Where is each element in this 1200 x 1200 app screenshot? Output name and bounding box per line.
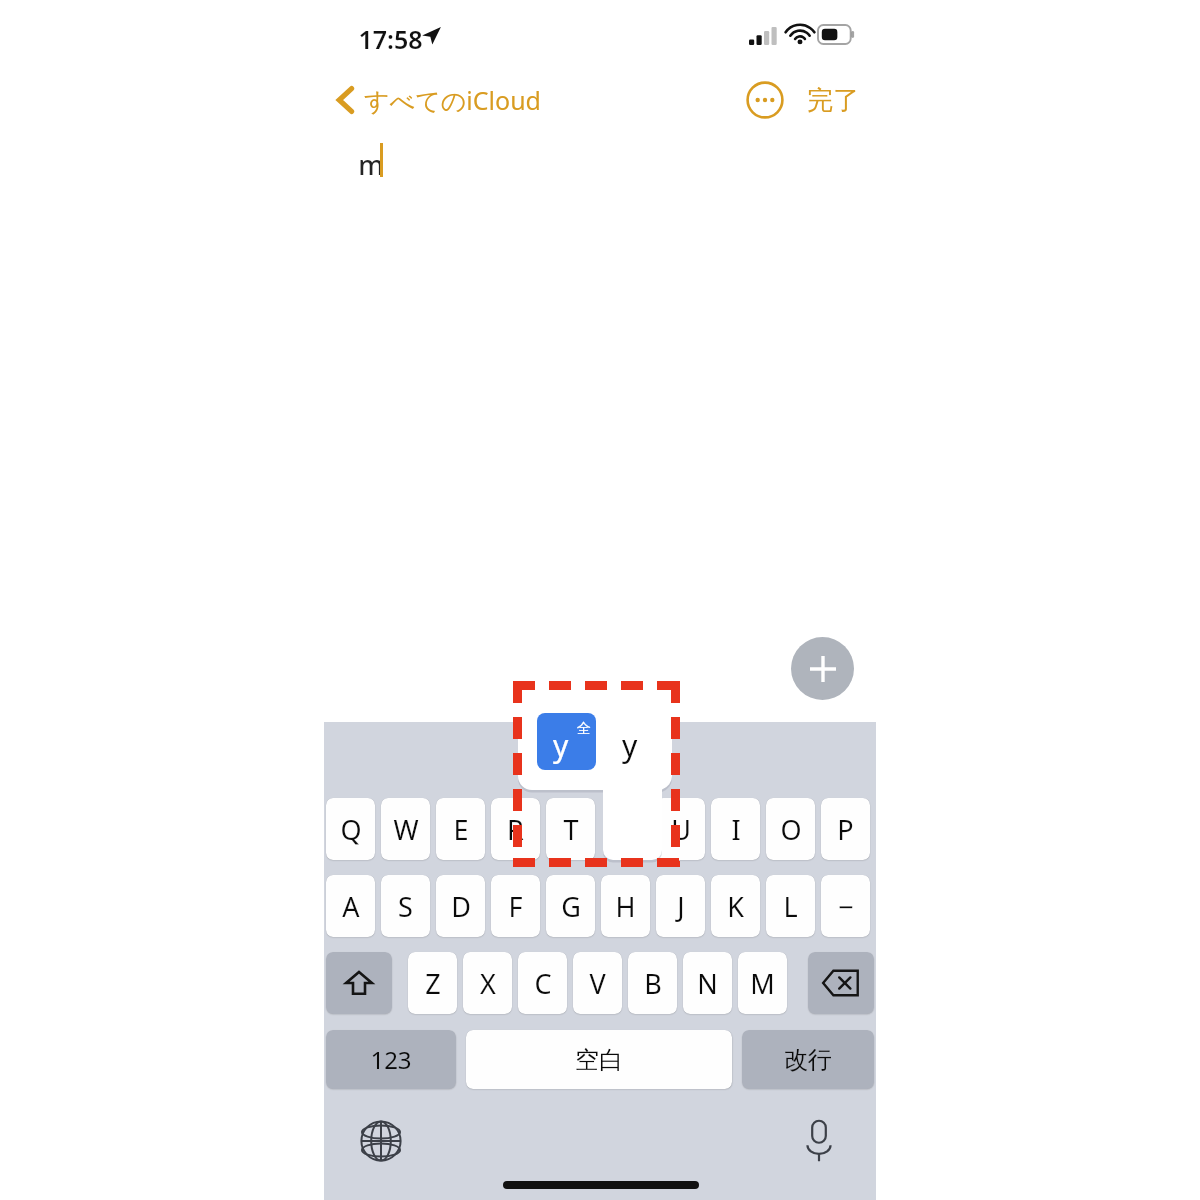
button[interactable]: M [738, 952, 787, 1014]
staticText: P [837, 811, 854, 848]
staticText: 空白 [575, 1045, 623, 1075]
button[interactable]: y [600, 713, 659, 770]
staticText: R [507, 811, 524, 848]
button[interactable]: X [463, 952, 512, 1014]
button[interactable]: I [711, 798, 760, 860]
button[interactable]: Dictation [790, 1112, 848, 1170]
staticText: F [508, 888, 523, 925]
button[interactable]: 完了 [798, 78, 868, 122]
button[interactable]: V [573, 952, 622, 1014]
button[interactable]: L [766, 875, 815, 937]
staticText: D [451, 888, 471, 925]
button[interactable]: y [537, 713, 596, 770]
button[interactable]: C [518, 952, 567, 1014]
button[interactable]: D [436, 875, 485, 937]
button[interactable]: Z [408, 952, 457, 1014]
button[interactable]: E [436, 798, 485, 860]
button[interactable]: 空白 [466, 1030, 732, 1089]
button[interactable]: Shift [326, 952, 392, 1014]
staticText: I [731, 811, 741, 848]
staticText: W [393, 811, 419, 848]
staticText: 完了 [807, 84, 859, 117]
staticText: T [563, 811, 579, 848]
staticText: U [671, 811, 691, 848]
button[interactable]: O [766, 798, 815, 860]
staticText: 17:58 [358, 22, 423, 56]
staticText: Z [425, 965, 441, 1002]
button[interactable]: N [683, 952, 732, 1014]
button[interactable]: G [546, 875, 595, 937]
staticText: y [553, 725, 569, 766]
staticText: M [750, 965, 775, 1002]
button[interactable]: F [491, 875, 540, 937]
button[interactable]: すべてのiCloud [330, 78, 530, 122]
button[interactable]: − [821, 875, 870, 937]
button[interactable]: P [821, 798, 870, 860]
button[interactable]: Q [326, 798, 375, 860]
staticText: X [480, 965, 496, 1002]
button[interactable]: A [326, 875, 375, 937]
staticText: − [838, 888, 854, 925]
button[interactable]: U [656, 798, 705, 860]
button[interactable]: 123 [326, 1030, 456, 1089]
staticText: m [358, 146, 384, 183]
staticText: A [342, 888, 360, 925]
staticText: K [727, 888, 744, 925]
staticText: V [589, 965, 606, 1002]
staticText: E [453, 811, 469, 848]
button[interactable]: More options [745, 80, 785, 120]
button[interactable]: Delete [808, 952, 874, 1014]
staticText: H [615, 888, 636, 925]
staticText: G [561, 888, 581, 925]
staticText: 全 [577, 720, 591, 738]
staticText: 123 [370, 1043, 412, 1076]
button[interactable]: 改行 [742, 1030, 874, 1089]
button[interactable]: J [656, 875, 705, 937]
staticText: Q [340, 811, 362, 848]
button[interactable]: R [491, 798, 540, 860]
staticText: S [398, 888, 413, 925]
staticText: B [644, 965, 662, 1002]
button[interactable]: B [628, 952, 677, 1014]
staticText: y [622, 725, 638, 766]
staticText: O [780, 811, 802, 848]
button[interactable]: S [381, 875, 430, 937]
button[interactable]: T [546, 798, 595, 860]
staticText: L [783, 888, 798, 925]
staticText: N [697, 965, 718, 1002]
button[interactable]: Add attachment [791, 637, 854, 700]
button[interactable]: K [711, 875, 760, 937]
staticText: C [534, 965, 552, 1002]
button[interactable]: H [601, 875, 650, 937]
staticText: 改行 [784, 1045, 832, 1075]
staticText: J [677, 888, 685, 925]
staticText: すべてのiCloud [364, 83, 541, 117]
button[interactable]: W [381, 798, 430, 860]
button[interactable]: Switch keyboard [352, 1112, 410, 1170]
